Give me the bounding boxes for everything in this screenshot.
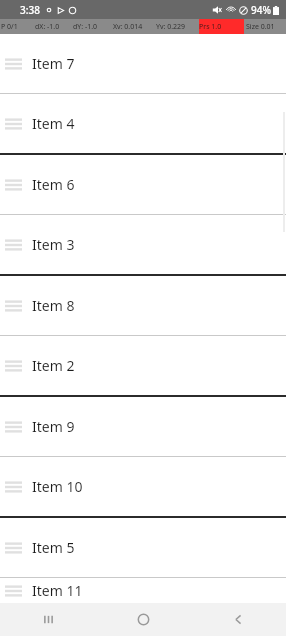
other: Drag handle for Item 5 xyxy=(5,541,22,555)
staticText: Item 11 xyxy=(32,581,83,600)
button[interactable]: Drag handle for Item 7 xyxy=(0,34,286,93)
other: Drag handle for Item 4 xyxy=(5,117,22,131)
button[interactable]: Drag handle for Item 11 xyxy=(0,578,286,603)
staticText: 94% xyxy=(251,3,271,17)
other: Drag handle for Item 7 xyxy=(5,57,22,71)
staticText: dX: -1.0 xyxy=(35,22,73,32)
staticText: 3:38 xyxy=(20,3,40,17)
button[interactable]: Drag handle for Item 8 xyxy=(0,276,286,335)
staticText: Item 7 xyxy=(32,54,75,73)
staticText: dY: -1.0 xyxy=(73,22,113,32)
other: Drag handle for Item 6 xyxy=(5,178,22,192)
button[interactable]: Home xyxy=(96,603,191,636)
staticText: Item 2 xyxy=(32,356,75,375)
staticText: Item 8 xyxy=(32,296,75,315)
staticText: Item 4 xyxy=(32,114,75,133)
staticText: Prs 1.0 xyxy=(199,22,222,32)
other: Drag handle for Item 8 xyxy=(5,299,22,313)
staticText: Item 9 xyxy=(32,417,75,436)
other: Drag handle for Item 9 xyxy=(5,420,22,434)
staticText: P 0/1 xyxy=(1,22,35,32)
button[interactable]: Drag handle for Item 4 xyxy=(0,94,286,153)
staticText: Item 5 xyxy=(32,538,75,557)
button[interactable]: Drag handle for Item 3 xyxy=(0,215,286,274)
button[interactable]: Back xyxy=(191,603,286,636)
staticText: Yv: 0.229 xyxy=(156,22,199,32)
other: Drag handle for Item 3 xyxy=(5,238,22,252)
staticText: Xv: 0.014 xyxy=(113,22,156,32)
button[interactable]: Drag handle for Item 10 xyxy=(0,457,286,516)
button[interactable]: Drag handle for Item 2 xyxy=(0,336,286,395)
other: Drag handle for Item 11 xyxy=(5,584,22,598)
button[interactable]: Drag handle for Item 6 xyxy=(0,155,286,214)
other: Drag handle for Item 10 xyxy=(5,480,22,494)
button[interactable]: Recent apps xyxy=(0,603,96,636)
button[interactable]: Drag handle for Item 5 xyxy=(0,518,286,577)
other: Drag handle for Item 2 xyxy=(5,359,22,373)
staticText: Size 0.01 xyxy=(246,22,285,32)
staticText: Item 3 xyxy=(32,235,75,254)
staticText: Item 10 xyxy=(32,477,83,496)
staticText: Item 6 xyxy=(32,175,75,194)
button[interactable]: Drag handle for Item 9 xyxy=(0,397,286,456)
